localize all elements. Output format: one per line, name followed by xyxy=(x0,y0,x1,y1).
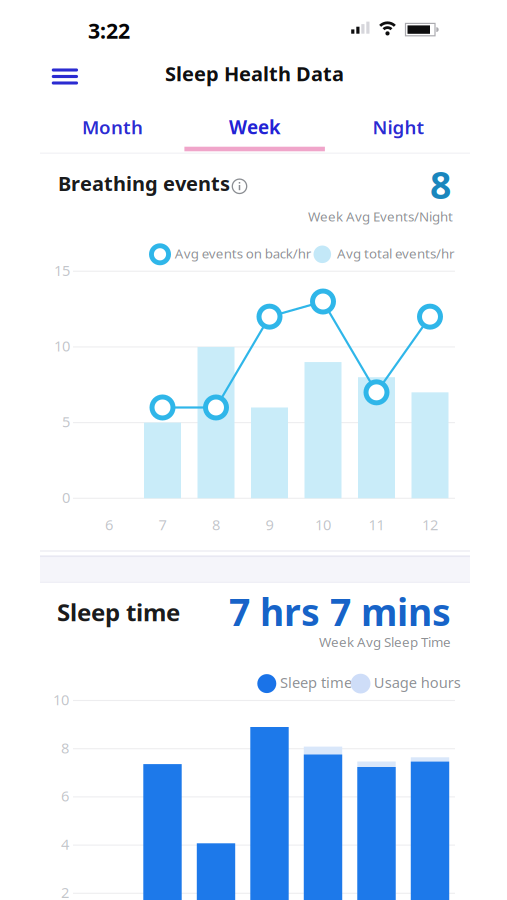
staticText: 6 xyxy=(105,515,113,534)
staticText: Sleep Health Data xyxy=(165,60,344,87)
button[interactable]: Night xyxy=(372,115,424,139)
staticText: Month xyxy=(82,115,143,139)
staticText: Usage hours xyxy=(374,672,461,692)
staticText: 2 xyxy=(61,883,69,900)
staticText: Sleep time xyxy=(57,596,180,628)
staticText: 7 xyxy=(158,515,166,534)
staticText: Avg events on back/hr xyxy=(175,244,312,262)
button[interactable]: About breathing events xyxy=(232,178,247,194)
staticText: Breathing events xyxy=(58,170,230,197)
staticText: Week xyxy=(229,115,281,139)
staticText: Avg total events/hr xyxy=(337,244,455,262)
staticText: Week Avg Sleep Time xyxy=(319,633,451,651)
staticText: 12 xyxy=(422,515,438,534)
staticText: 7 hrs 7 mins xyxy=(229,587,451,636)
staticText: 15 xyxy=(54,260,70,280)
staticText: 5 xyxy=(62,412,70,431)
button[interactable]: Week xyxy=(229,115,281,139)
staticText: 9 xyxy=(265,515,273,534)
button[interactable]: Month xyxy=(82,115,143,139)
staticText: 11 xyxy=(368,515,384,534)
staticText: 10 xyxy=(54,336,70,356)
button[interactable]: Menu xyxy=(52,68,78,85)
staticText: 3:22 xyxy=(88,16,130,45)
staticText: Night xyxy=(372,115,424,139)
staticText: Week Avg Events/Night xyxy=(308,207,453,225)
staticText: 10 xyxy=(53,690,69,709)
staticText: 8 xyxy=(61,738,69,757)
staticText: 10 xyxy=(315,515,331,534)
staticText: 8 xyxy=(212,515,220,534)
staticText: Sleep time xyxy=(280,672,352,692)
staticText: 6 xyxy=(61,786,69,806)
staticText: 8 xyxy=(430,160,451,209)
staticText: 0 xyxy=(62,488,70,507)
staticText: 4 xyxy=(61,834,69,854)
